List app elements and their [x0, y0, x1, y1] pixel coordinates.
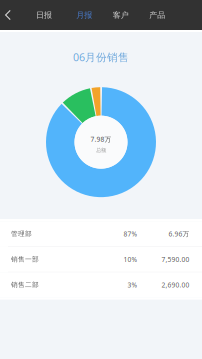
- staticText: 7,590.00: [161, 255, 189, 264]
- staticText: 日报: [36, 10, 52, 20]
- staticText: 月报: [76, 10, 92, 20]
- staticText: 06月份销售: [73, 50, 129, 64]
- button[interactable]: 客户: [109, 0, 133, 30]
- staticText: 销售一部: [11, 255, 39, 263]
- staticText: 10%: [123, 255, 137, 264]
- staticText: 产品: [149, 10, 165, 20]
- staticText: 销售二部: [11, 281, 39, 289]
- staticText: 6.96万: [168, 229, 189, 238]
- staticText: 客户: [113, 10, 129, 20]
- button[interactable]: 产品: [145, 0, 169, 30]
- staticText: 2,690.00: [161, 280, 189, 289]
- staticText: 总额: [96, 147, 106, 154]
- button[interactable]: 月报: [72, 0, 96, 30]
- button[interactable]: 销售一部: [0, 247, 202, 272]
- staticText: 3%: [127, 280, 137, 289]
- staticText: 87%: [123, 229, 137, 238]
- button[interactable]: Back: [0, 0, 16, 30]
- button[interactable]: 销售二部: [0, 272, 202, 297]
- button[interactable]: 日报: [32, 0, 56, 30]
- button[interactable]: 管理部: [0, 221, 202, 247]
- staticText: 7.98万: [90, 135, 111, 144]
- staticText: 管理部: [11, 230, 32, 238]
